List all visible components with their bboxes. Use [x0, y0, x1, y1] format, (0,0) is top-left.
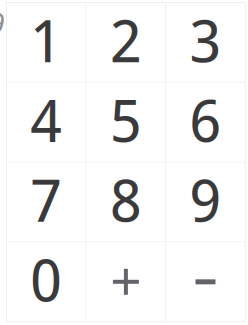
staticText: 5	[110, 79, 142, 159]
staticText: 7	[30, 159, 62, 239]
staticText: 0	[30, 239, 62, 319]
button[interactable]: Plus	[87, 242, 165, 321]
staticText: 1	[30, 0, 62, 79]
button[interactable]: 2	[87, 3, 165, 82]
button[interactable]: 5	[87, 83, 165, 162]
staticText: 3	[189, 0, 221, 79]
staticText: 8	[110, 159, 142, 239]
button[interactable]: 9	[166, 163, 245, 241]
button[interactable]: 3	[166, 3, 245, 82]
staticText: 6	[189, 79, 221, 159]
button[interactable]: 7	[7, 163, 86, 241]
staticText: 9	[0, 3, 4, 43]
button[interactable]: 8	[87, 163, 165, 241]
staticText: 4	[30, 79, 62, 159]
button[interactable]: 4	[7, 83, 86, 162]
staticText: 2	[110, 0, 142, 79]
button[interactable]: 0	[7, 242, 86, 321]
staticText: 9	[189, 159, 221, 239]
button[interactable]: 1	[7, 3, 86, 82]
button[interactable]: 6	[166, 83, 245, 162]
button[interactable]: Minus	[166, 242, 245, 321]
